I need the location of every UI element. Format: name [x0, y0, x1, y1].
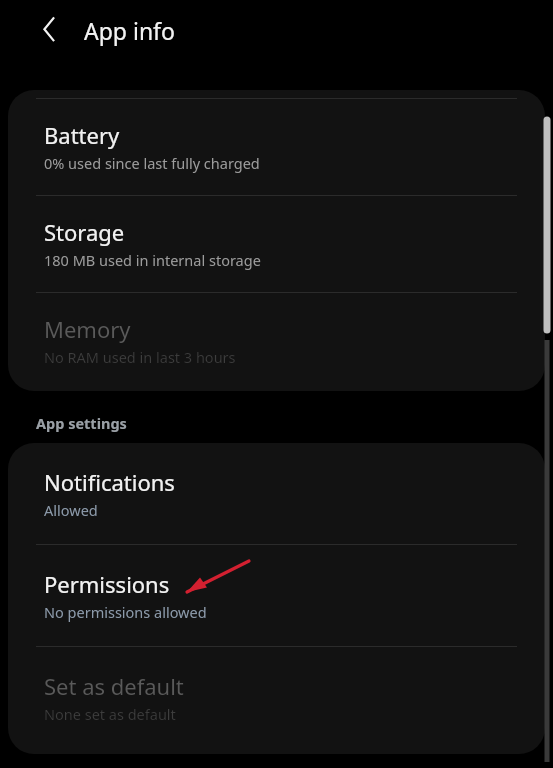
- button[interactable]: Notifications: [8, 443, 545, 544]
- staticText: 180 MB used in internal storage: [44, 250, 261, 270]
- staticText: None set as default: [44, 704, 176, 724]
- staticText: Allowed: [44, 500, 98, 520]
- staticText: Memory: [44, 314, 131, 344]
- button[interactable]: Set as default: [8, 647, 545, 754]
- staticText: App info: [84, 15, 175, 46]
- staticText: Storage: [44, 217, 125, 247]
- button[interactable]: Memory: [8, 293, 545, 391]
- button[interactable]: Back: [26, 9, 70, 53]
- staticText: No permissions allowed: [44, 602, 207, 622]
- staticText: No RAM used in last 3 hours: [44, 347, 236, 367]
- staticText: Notifications: [44, 467, 175, 497]
- staticText: App settings: [36, 413, 127, 433]
- staticText: Set as default: [44, 671, 184, 701]
- staticText: Battery: [44, 120, 120, 150]
- button[interactable]: Battery: [8, 99, 545, 195]
- staticText: Permissions: [44, 569, 170, 599]
- button[interactable]: Storage: [8, 196, 545, 292]
- button[interactable]: Permissions: [8, 545, 545, 646]
- staticText: 0% used since last fully charged: [44, 153, 260, 173]
